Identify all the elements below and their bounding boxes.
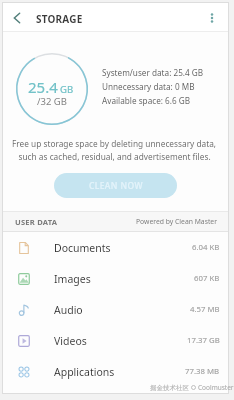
staticText: Coolmuster: [198, 383, 234, 392]
button[interactable]: Audio: [3, 294, 228, 325]
staticText: 4.57 MB: [190, 304, 220, 315]
button[interactable]: More options: [202, 8, 222, 28]
staticText: /32 GB: [37, 95, 67, 108]
staticText: Images: [54, 272, 91, 286]
staticText: 掘金技术社区: [150, 384, 189, 392]
staticText: CLEAN NOW: [89, 180, 143, 192]
staticText: GB: [60, 83, 74, 96]
staticText: 17.37 GB: [187, 335, 220, 346]
staticText: Videos: [54, 334, 87, 348]
staticText: 77.38 MB: [185, 366, 220, 377]
staticText: Powered by Clean Master: [136, 217, 217, 226]
staticText: Available space: 6.6 GB: [102, 95, 191, 106]
button[interactable]: Applications: [3, 356, 228, 387]
button[interactable]: Images: [3, 263, 228, 294]
button[interactable]: Documents: [3, 232, 228, 263]
button[interactable]: CLEAN NOW: [54, 173, 177, 198]
staticText: 607 KB: [194, 273, 220, 284]
staticText: USER DATA: [15, 217, 58, 227]
button[interactable]: Videos: [3, 325, 228, 356]
staticText: STORAGE: [36, 12, 83, 26]
button[interactable]: Back: [7, 8, 27, 28]
staticText: Documents: [54, 241, 111, 255]
staticText: Applications: [54, 365, 115, 379]
staticText: such as cached, residual, and advertisem…: [12, 151, 211, 162]
staticText: 6.04 KB: [192, 242, 220, 253]
staticText: 25.4: [28, 77, 58, 97]
staticText: Free up storage space by deleting unnece…: [12, 138, 217, 149]
staticText: Unnecessary data: 0 MB: [102, 81, 195, 92]
staticText: System/user data: 25.4 GB: [102, 67, 204, 78]
staticText: Audio: [54, 303, 83, 317]
